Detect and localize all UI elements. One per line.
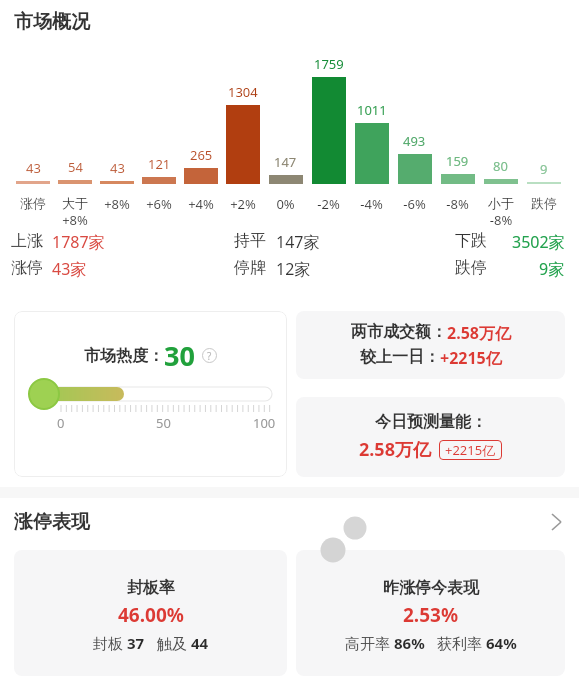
staticText: 1787家: [52, 231, 105, 253]
staticText: 1304: [228, 83, 258, 101]
staticText: 9: [540, 160, 548, 178]
staticText: +2215亿: [445, 441, 496, 459]
staticText: 停牌: [234, 258, 266, 278]
staticText: 121: [148, 155, 171, 173]
staticText: 147: [274, 153, 297, 171]
staticText: +6%: [146, 195, 172, 213]
staticText: 今日预测量能：: [375, 412, 487, 432]
staticText: 昨涨停今表现: [383, 578, 479, 598]
button[interactable]: 今日预测量能：: [296, 397, 565, 477]
staticText: 44: [191, 633, 209, 653]
staticText: 上涨: [11, 231, 43, 251]
staticText: 下跌: [455, 231, 487, 251]
staticText: 0%: [276, 195, 295, 213]
staticText: 市场热度：: [84, 346, 164, 366]
staticText: +2%: [230, 195, 256, 213]
staticText: 100: [253, 414, 276, 432]
button[interactable]: 封板率: [14, 550, 287, 676]
staticText: 147家: [276, 231, 320, 253]
staticText: 封板: [93, 633, 127, 653]
button[interactable]: 涨停表现: [0, 510, 579, 534]
staticText: -4%: [360, 195, 383, 213]
staticText: 2.58万亿: [447, 322, 511, 344]
staticText: 12家: [276, 258, 311, 280]
staticText: 46.00%: [118, 602, 184, 628]
staticText: 2.53%: [403, 602, 459, 628]
staticText: 涨停: [11, 258, 43, 278]
staticText: 3502家: [512, 231, 565, 253]
staticText: -2%: [317, 195, 340, 213]
staticText: 43: [26, 159, 41, 177]
staticText: -6%: [403, 195, 426, 213]
staticText: +4%: [188, 195, 214, 213]
staticText: -8%: [446, 195, 469, 213]
staticText: ?: [207, 349, 212, 363]
staticText: 0: [57, 414, 65, 432]
button[interactable]: 昨涨停今表现: [296, 550, 565, 676]
button[interactable]: 两市成交额：: [296, 311, 565, 379]
staticText: 获利率: [437, 633, 486, 653]
staticText: 80: [493, 157, 508, 175]
staticText: 较上一日：: [360, 347, 440, 367]
staticText: 2.58万亿: [359, 437, 431, 462]
staticText: 54: [68, 158, 83, 176]
staticText: 持平: [234, 231, 266, 251]
staticText: 市场概况: [14, 10, 90, 34]
staticText: 50: [156, 414, 171, 432]
staticText: 9家: [539, 258, 565, 280]
staticText: +8%: [104, 195, 130, 213]
staticText: 43家: [52, 258, 87, 280]
staticText: 86%: [394, 633, 425, 653]
staticText: 30: [164, 337, 195, 374]
staticText: 265: [190, 146, 213, 164]
staticText: 64%: [486, 633, 517, 653]
staticText: 封板率: [127, 578, 175, 598]
staticText: 涨停表现: [14, 510, 90, 534]
staticText: 高开率: [345, 633, 394, 653]
staticText: 大于 +8%: [62, 195, 88, 228]
staticText: 涨停: [20, 195, 46, 211]
staticText: 1759: [314, 55, 344, 73]
staticText: 493: [403, 132, 426, 150]
staticText: 两市成交额：: [351, 322, 447, 342]
staticText: 37: [127, 633, 145, 653]
staticText: 1011: [357, 101, 387, 119]
staticText: 触及: [157, 633, 191, 653]
staticText: +2215亿: [440, 347, 502, 369]
staticText: 小于 -8%: [488, 195, 514, 228]
staticText: 跌停: [531, 195, 557, 211]
button[interactable]: 市场热度：: [14, 311, 287, 477]
staticText: 159: [446, 152, 469, 170]
staticText: 43: [110, 159, 125, 177]
staticText: 跌停: [455, 258, 487, 278]
